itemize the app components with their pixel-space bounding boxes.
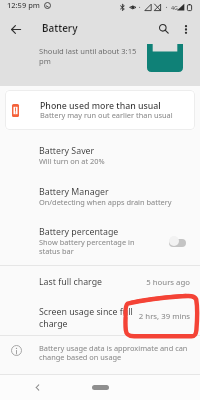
button[interactable]: Battery percentage	[0, 223, 200, 261]
staticText: Phone used more than usual	[40, 100, 161, 112]
button[interactable]: Phone used more than usual	[5, 90, 195, 130]
staticText: 12:59 pm	[7, 0, 40, 10]
staticText: Battery may run out earlier than usual	[40, 110, 173, 120]
staticText: Battery	[42, 22, 78, 35]
staticText: 4G	[171, 4, 179, 11]
button[interactable]: Last full charge	[0, 268, 200, 296]
staticText: 5 hours ago	[130, 277, 190, 288]
button[interactable]: Navigate up	[7, 20, 25, 38]
staticText: Should last until about 3:15 pm	[39, 46, 145, 66]
button[interactable]: Screen usage since full charge	[0, 298, 200, 334]
staticText: Last full charge	[39, 276, 103, 288]
button[interactable]: Battery Manager	[0, 183, 200, 221]
staticText: Battery percentage	[39, 226, 119, 238]
staticText: Battery Manager	[39, 186, 109, 198]
button[interactable]: Battery Saver	[0, 142, 200, 180]
button[interactable]: Home	[92, 385, 109, 390]
staticText: Show battery percentage in status bar	[39, 237, 137, 257]
staticText: On/detecting when apps drain battery	[39, 197, 172, 207]
staticText: Will turn on at 20%	[39, 156, 105, 166]
button[interactable]: More options	[176, 19, 196, 39]
button[interactable]: Back	[30, 380, 45, 395]
staticText: Screen usage since full charge	[39, 306, 149, 329]
button[interactable]: Search	[154, 19, 174, 39]
staticText: Battery usage data is approximate and ca…	[39, 343, 189, 363]
staticText: 2 hrs, 39 mins	[120, 311, 190, 322]
staticText: Battery Saver	[39, 145, 95, 157]
